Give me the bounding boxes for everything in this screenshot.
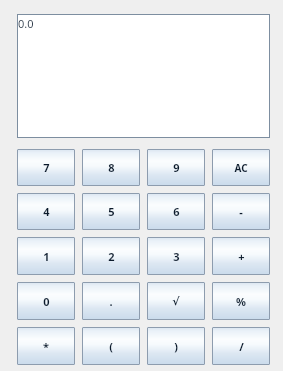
staticText: 8 — [108, 160, 115, 175]
staticText: 2 — [108, 249, 115, 264]
button[interactable]: 8 — [82, 149, 140, 186]
button[interactable]: 2 — [82, 237, 140, 275]
staticText: 1 — [43, 249, 50, 264]
staticText: ) — [174, 339, 178, 354]
staticText: 3 — [173, 249, 180, 264]
button[interactable]: % — [212, 282, 270, 320]
staticText: 9 — [173, 160, 180, 175]
staticText: . — [109, 294, 113, 309]
staticText: 6 — [173, 204, 180, 219]
staticText: + — [238, 249, 245, 264]
staticText: - — [239, 204, 243, 219]
staticText: ( — [109, 339, 113, 354]
button[interactable]: ) — [147, 327, 205, 365]
staticText: 0 — [43, 294, 50, 309]
button[interactable]: 1 — [17, 237, 75, 275]
button[interactable]: AC — [212, 149, 270, 186]
button[interactable]: 5 — [82, 193, 140, 230]
button[interactable]: 3 — [147, 237, 205, 275]
staticText: 0.0 — [18, 16, 34, 31]
staticText: AC — [234, 161, 248, 175]
button[interactable]: * — [17, 327, 75, 365]
button[interactable]: 9 — [147, 149, 205, 186]
button[interactable]: + — [212, 237, 270, 275]
button[interactable]: ( — [82, 327, 140, 365]
button[interactable]: √ — [147, 282, 205, 320]
button[interactable]: / — [212, 327, 270, 365]
button[interactable]: 7 — [17, 149, 75, 186]
button[interactable]: 0 — [17, 282, 75, 320]
staticText: √ — [172, 295, 180, 308]
staticText: * — [43, 339, 49, 354]
staticText: / — [239, 339, 244, 354]
button[interactable]: - — [212, 193, 270, 230]
button[interactable]: 4 — [17, 193, 75, 230]
button[interactable]: . — [82, 282, 140, 320]
button[interactable]: 6 — [147, 193, 205, 230]
staticText: 4 — [43, 204, 50, 219]
button[interactable]: 0.0 — [17, 14, 270, 138]
staticText: 7 — [43, 160, 50, 175]
staticText: 5 — [108, 204, 115, 219]
staticText: % — [236, 294, 246, 309]
